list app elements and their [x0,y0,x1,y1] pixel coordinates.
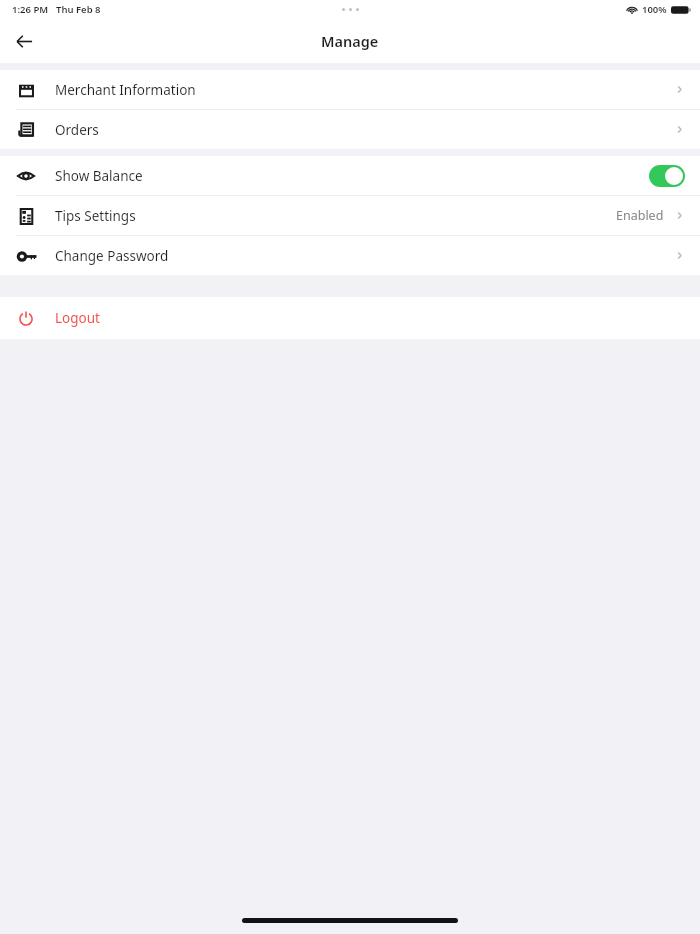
button[interactable]: Merchant Information [0,70,700,109]
staticText: Enabled [616,207,664,224]
button[interactable]: Show Balance toggle [649,165,685,187]
button[interactable]: Back [6,23,42,59]
staticText: Merchant Information [55,81,196,99]
button[interactable]: Logout [0,297,700,339]
staticText: Thu Feb 8 [56,3,101,16]
button[interactable]: Tips Settings [0,196,700,235]
staticText: Tips Settings [55,207,136,225]
button[interactable]: Orders [0,110,700,149]
staticText: Logout [55,309,100,327]
staticText: 1:26 PM [12,3,49,16]
staticText: Show Balance [55,167,143,185]
button[interactable]: Show Balance [0,156,700,195]
staticText: 100% [642,3,667,16]
staticText: Manage [321,31,379,51]
button[interactable]: Change Password [0,236,700,275]
staticText: Change Password [55,247,169,265]
staticText: Orders [55,121,99,139]
